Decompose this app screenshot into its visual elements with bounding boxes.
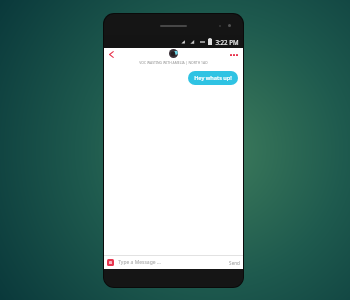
staticText: VOC WASTING WITH AMELIA | NORTH 1AO: [139, 60, 208, 65]
button[interactable]: Hey whats up!: [188, 71, 238, 85]
button[interactable]: Attach: [107, 259, 114, 266]
staticText: Send: [229, 260, 240, 266]
staticText: Type a Message ...: [118, 259, 161, 266]
button[interactable]: VOC WASTING WITH AMELIA | NORTH 1AO: [139, 49, 208, 65]
button[interactable]: Back: [106, 49, 117, 60]
staticText: Hey whats up!: [194, 74, 232, 82]
staticText: 3:22 PM: [215, 38, 239, 46]
button[interactable]: More options: [227, 50, 241, 59]
button[interactable]: Send: [229, 256, 240, 269]
